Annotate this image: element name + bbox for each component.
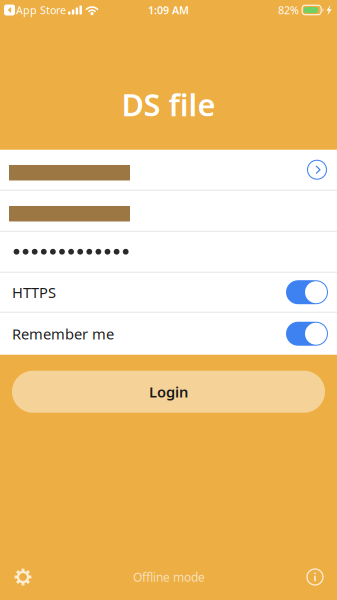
staticText: 1:09 AM [148, 3, 189, 17]
staticText: DS file [121, 84, 215, 125]
staticText: Login [149, 382, 188, 401]
button[interactable]: Remember me [0, 313, 337, 355]
staticText: Offline mode [133, 569, 205, 585]
staticText: Remember me [12, 324, 114, 343]
staticText: App Store [16, 3, 66, 17]
button[interactable]: HTTPS [0, 273, 337, 312]
button[interactable]: Offline mode [133, 560, 205, 594]
button[interactable]: About [298, 560, 332, 594]
staticText: HTTPS [12, 282, 56, 302]
button[interactable]: Settings [6, 560, 40, 594]
staticText: 82% [278, 3, 299, 17]
button[interactable]: Login [12, 371, 325, 413]
button[interactable]: QuickConnect ID [303, 156, 331, 184]
